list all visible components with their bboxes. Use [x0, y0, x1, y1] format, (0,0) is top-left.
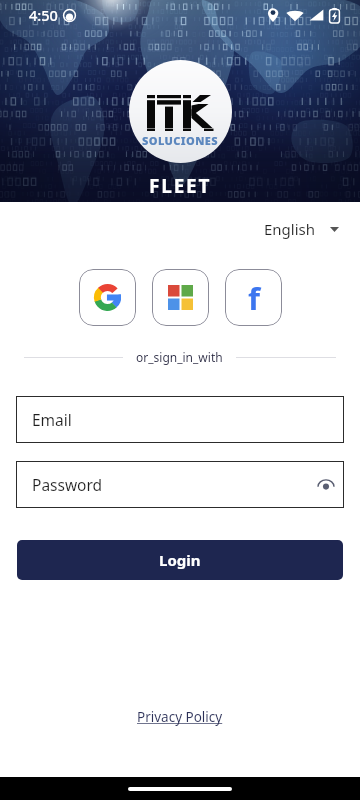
button[interactable]: Email — [16, 396, 344, 443]
staticText: SOLUCIONES — [142, 133, 219, 148]
staticText: Password — [32, 474, 103, 495]
staticText: Login — [159, 550, 201, 570]
staticText: English — [264, 219, 316, 239]
staticText: Email — [32, 409, 72, 430]
button[interactable]: Show password — [315, 474, 337, 496]
button[interactable]: Sign in with Facebook — [225, 269, 282, 326]
staticText: f — [248, 277, 260, 319]
button[interactable]: English — [260, 216, 343, 242]
button[interactable]: Login — [17, 540, 343, 580]
staticText: 4:50 — [29, 5, 58, 25]
staticText: or_sign_in_with — [136, 349, 223, 365]
button[interactable]: Privacy Policy — [137, 708, 223, 726]
staticText: FLEET — [149, 173, 212, 199]
button[interactable]: Sign in with Microsoft — [152, 269, 209, 326]
button[interactable]: Sign in with Google — [79, 269, 136, 326]
button[interactable]: Password — [16, 461, 344, 508]
